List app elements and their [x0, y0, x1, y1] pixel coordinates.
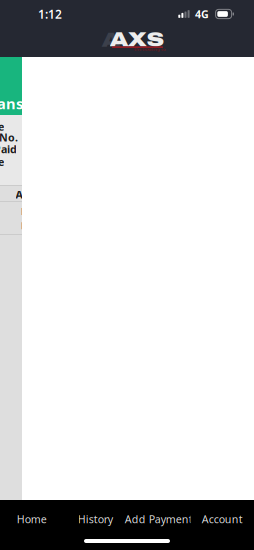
staticText: Mode	[0, 155, 4, 169]
staticText: Amount Paid	[0, 142, 17, 156]
button[interactable]: Home	[0, 500, 63, 538]
staticText: Amount	[16, 187, 59, 201]
button[interactable]: History	[63, 500, 127, 538]
staticText: Booking fee	[21, 205, 73, 217]
staticText: Add Payment	[125, 512, 193, 526]
staticText: Account	[202, 512, 243, 526]
button[interactable]: Account	[190, 500, 254, 538]
staticText: Processing fee	[21, 219, 83, 232]
staticText: A	[101, 29, 120, 51]
staticText: Date	[0, 119, 4, 134]
button[interactable]: Add Payment	[127, 500, 190, 538]
staticText: the ticketing co.	[134, 46, 166, 52]
staticText: AXS	[109, 29, 164, 50]
staticText: Ref. No.	[0, 130, 18, 144]
staticText: Home	[17, 512, 47, 526]
staticText: 1:12	[38, 6, 62, 22]
staticText: Transaction	[0, 94, 69, 113]
staticText: History	[78, 512, 113, 526]
staticText: 4G	[195, 7, 209, 21]
